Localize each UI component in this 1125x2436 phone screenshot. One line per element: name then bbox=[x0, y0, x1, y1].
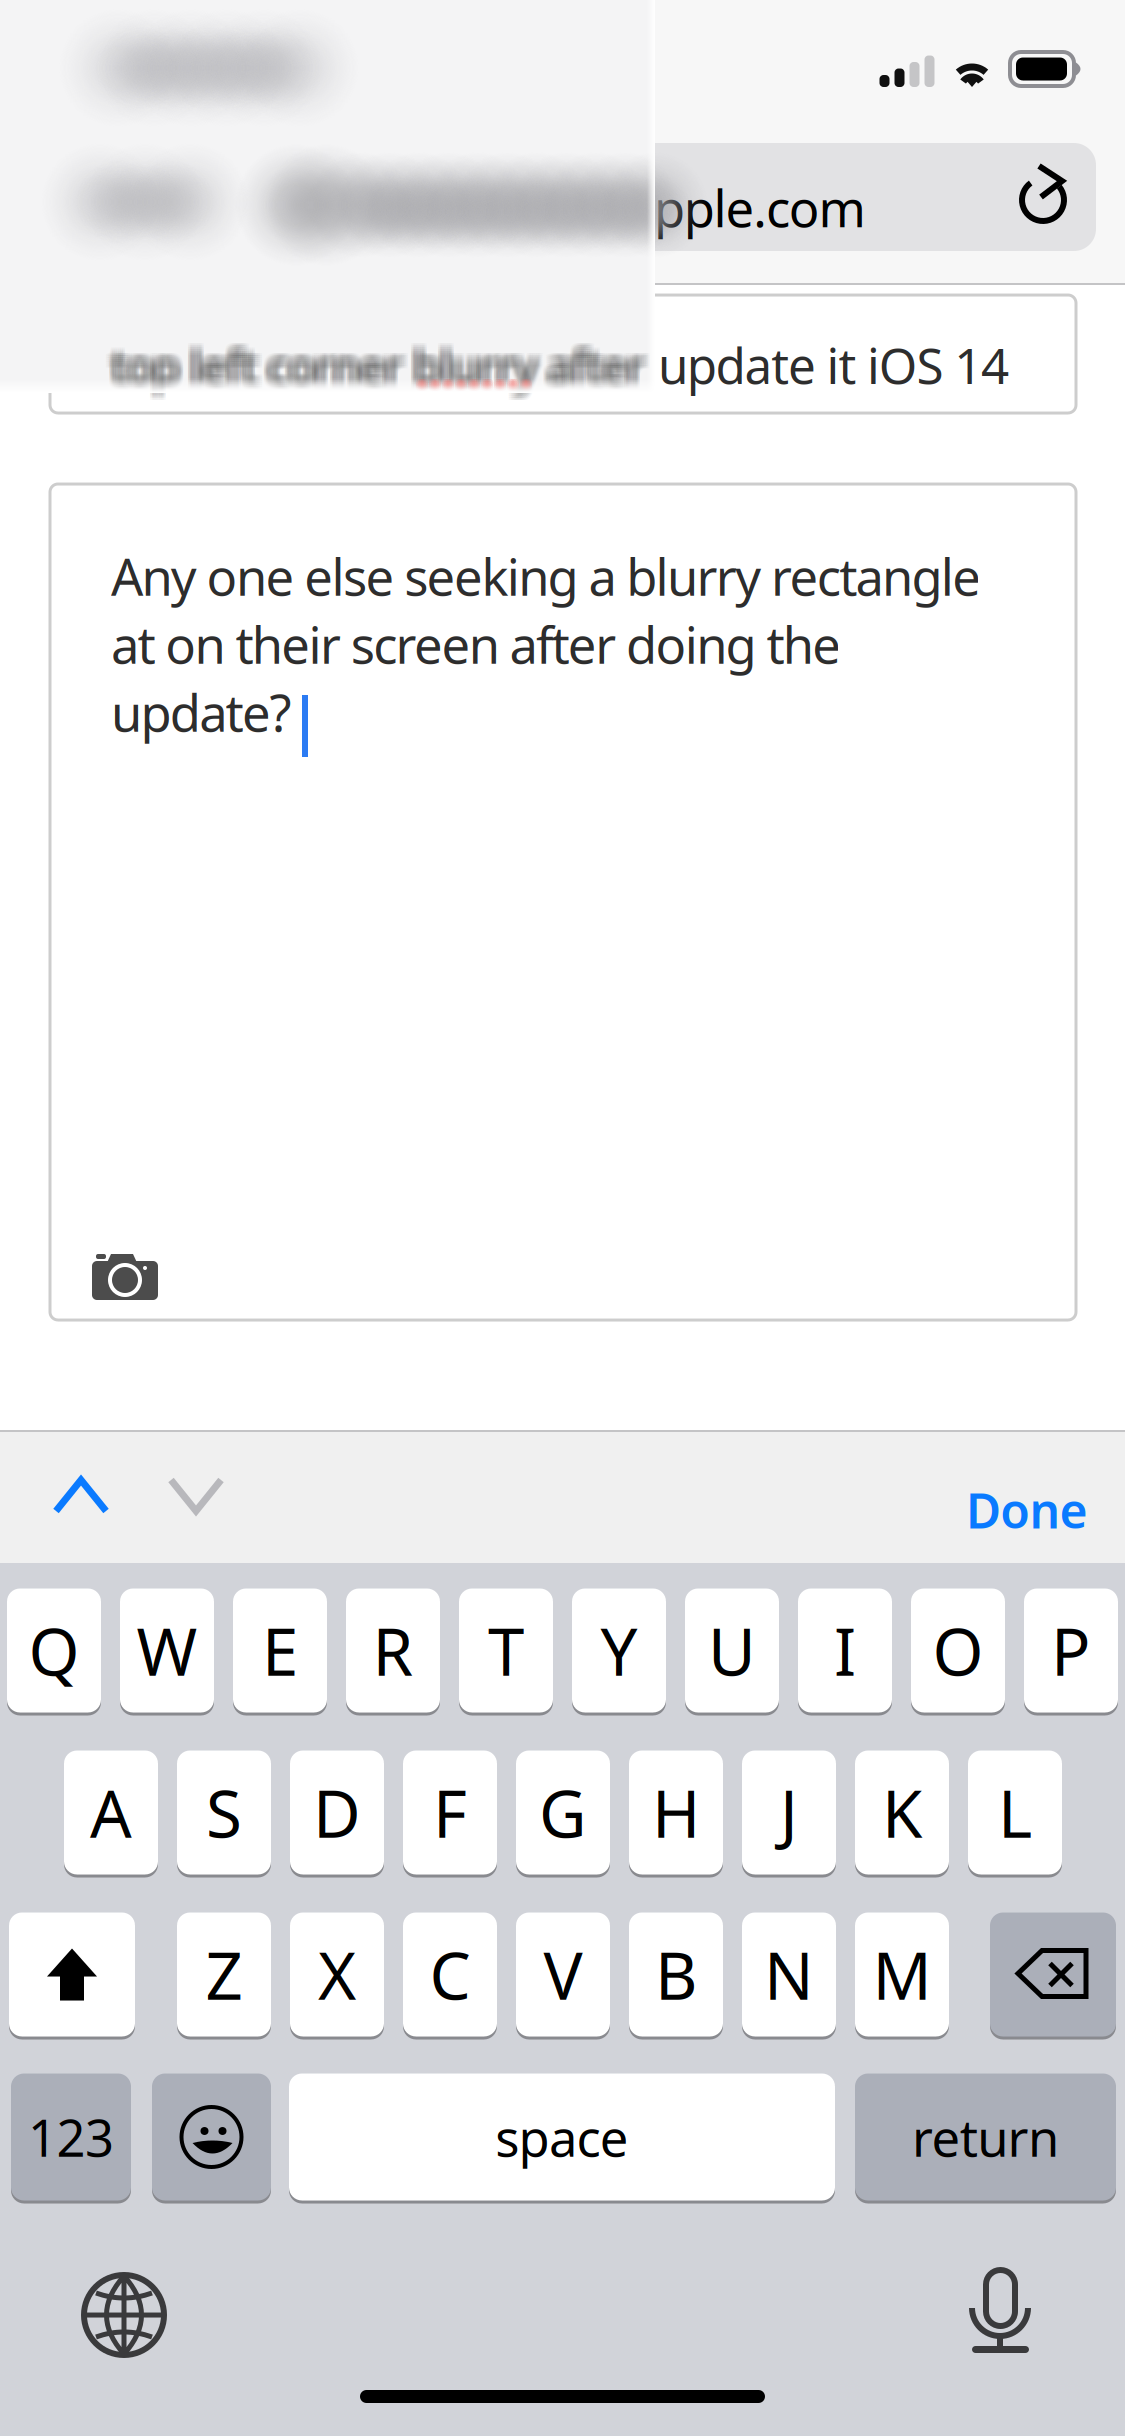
staticText: top left corner blurry after bbox=[117, 334, 651, 394]
staticText: I bbox=[834, 1607, 856, 1694]
staticText: 123 bbox=[28, 2103, 114, 2171]
staticText: top left corner blurry after bbox=[111, 340, 645, 400]
button[interactable]: O bbox=[911, 1587, 1005, 1714]
staticText: H bbox=[652, 1769, 700, 1856]
staticText: pple.com bbox=[654, 174, 866, 241]
staticText: top left corner blurry after bbox=[115, 330, 649, 390]
staticText: top left corner blurry after bbox=[111, 342, 645, 402]
button[interactable]: E bbox=[233, 1587, 327, 1714]
button[interactable]: X bbox=[290, 1911, 384, 2038]
button[interactable]: update it iOS 14 bbox=[50, 295, 1076, 413]
staticText: update it iOS 14 bbox=[658, 332, 1009, 397]
button[interactable]: Next field bbox=[137, 1446, 255, 1545]
staticText: S bbox=[206, 1769, 242, 1856]
staticText: top left corner blurry after bbox=[107, 330, 641, 390]
button[interactable]: R bbox=[346, 1587, 440, 1714]
staticText: space bbox=[495, 2103, 629, 2171]
button[interactable]: N bbox=[742, 1911, 836, 2038]
button[interactable]: I bbox=[798, 1587, 892, 1714]
staticText: top left corner blurry after bbox=[105, 340, 639, 400]
button[interactable]: H bbox=[629, 1749, 723, 1876]
staticText: D bbox=[313, 1769, 361, 1856]
staticText: top left corner blurry after bbox=[115, 338, 649, 398]
button[interactable]: Dictate bbox=[972, 2270, 1029, 2353]
button[interactable]: Done bbox=[940, 1444, 1114, 1576]
staticText: F bbox=[433, 1769, 467, 1856]
staticText: top left corner blurry after bbox=[117, 330, 651, 390]
button[interactable]: G bbox=[516, 1749, 610, 1876]
staticText: R bbox=[372, 1607, 413, 1694]
staticText: top left corner blurry after bbox=[115, 332, 649, 392]
button[interactable]: U bbox=[685, 1587, 779, 1714]
staticText: Q bbox=[28, 1607, 79, 1694]
staticText: top left corner blurry after bbox=[109, 330, 643, 390]
button[interactable]: J bbox=[742, 1749, 836, 1876]
button[interactable]: T bbox=[459, 1587, 553, 1714]
button[interactable]: Next keyboard bbox=[83, 2274, 165, 2356]
staticText: top left corner blurry after bbox=[113, 330, 647, 390]
button[interactable]: A bbox=[64, 1749, 158, 1876]
button[interactable]: B bbox=[629, 1911, 723, 2038]
staticText: top left corner blurry after bbox=[117, 336, 651, 396]
staticText: Z bbox=[205, 1931, 242, 2018]
staticText: top left corner blurry after bbox=[109, 340, 643, 400]
button[interactable]: F bbox=[403, 1749, 497, 1876]
button[interactable]: M bbox=[855, 1911, 949, 2038]
staticText: Y bbox=[600, 1607, 637, 1694]
staticText: P bbox=[1051, 1607, 1091, 1694]
staticText: top left corner blurry after bbox=[109, 336, 643, 396]
staticText: top left corner blurry after bbox=[107, 332, 641, 392]
staticText: E bbox=[262, 1607, 298, 1694]
staticText: top left corner blurry after bbox=[107, 334, 641, 394]
staticText: top left corner blurry after bbox=[109, 338, 643, 398]
staticText: return bbox=[912, 2103, 1059, 2171]
staticText: top left corner blurry after bbox=[107, 342, 641, 402]
staticText: M bbox=[872, 1931, 931, 2018]
button[interactable]: D bbox=[290, 1749, 384, 1876]
staticText: K bbox=[882, 1769, 922, 1856]
staticText: top left corner blurry after bbox=[107, 340, 641, 400]
button[interactable]: Delete bbox=[990, 1911, 1116, 2038]
staticText: N bbox=[764, 1931, 814, 2018]
button[interactable]: Previous field bbox=[22, 1446, 140, 1545]
staticText: top left corner blurry after bbox=[113, 336, 647, 396]
staticText: top left corner blurry after bbox=[109, 332, 643, 392]
staticText: top left corner blurry after bbox=[117, 338, 651, 398]
button[interactable]: Y bbox=[572, 1587, 666, 1714]
button[interactable]: S bbox=[177, 1749, 271, 1876]
staticText: top left corner blurry after bbox=[117, 342, 651, 402]
button[interactable]: pple.com bbox=[30, 143, 1096, 251]
button[interactable]: return bbox=[855, 2072, 1116, 2202]
button[interactable]: Z bbox=[177, 1911, 271, 2038]
staticText: top left corner blurry after bbox=[109, 342, 643, 402]
staticText: C bbox=[429, 1931, 470, 2018]
staticText: U bbox=[708, 1607, 756, 1694]
staticText: top left corner blurry after bbox=[111, 338, 645, 398]
button[interactable]: V bbox=[516, 1911, 610, 2038]
button[interactable]: P bbox=[1024, 1587, 1118, 1714]
staticText: V bbox=[543, 1931, 582, 2018]
staticText: top left corner blurry after bbox=[113, 340, 647, 400]
button[interactable]: L bbox=[968, 1749, 1062, 1876]
button[interactable]: W bbox=[120, 1587, 214, 1714]
button[interactable]: 123 bbox=[11, 2072, 131, 2202]
staticText: L bbox=[998, 1769, 1032, 1856]
staticText: top left corner blurry after bbox=[115, 340, 649, 400]
staticText: top left corner blurry after bbox=[117, 340, 651, 400]
button[interactable]: C bbox=[403, 1911, 497, 2038]
staticText: at on their screen after doing the bbox=[111, 610, 841, 678]
staticText: update? bbox=[111, 678, 291, 746]
staticText: O bbox=[932, 1607, 983, 1694]
staticText: top left corner blurry after bbox=[111, 334, 645, 394]
staticText: T bbox=[488, 1607, 524, 1694]
button[interactable]: K bbox=[855, 1749, 949, 1876]
staticText: top left corner blurry after bbox=[113, 332, 647, 392]
button[interactable]: Shift bbox=[9, 1911, 135, 2038]
staticText: top left corner blurry after bbox=[113, 334, 647, 394]
button[interactable]: Add photo bbox=[92, 1253, 158, 1302]
button[interactable]: Emoji bbox=[152, 2072, 271, 2202]
staticText: top left corner blurry after bbox=[107, 336, 641, 396]
staticText: top left corner blurry after bbox=[105, 336, 639, 396]
button[interactable]: Q bbox=[7, 1587, 101, 1714]
button[interactable]: space bbox=[289, 2072, 835, 2202]
